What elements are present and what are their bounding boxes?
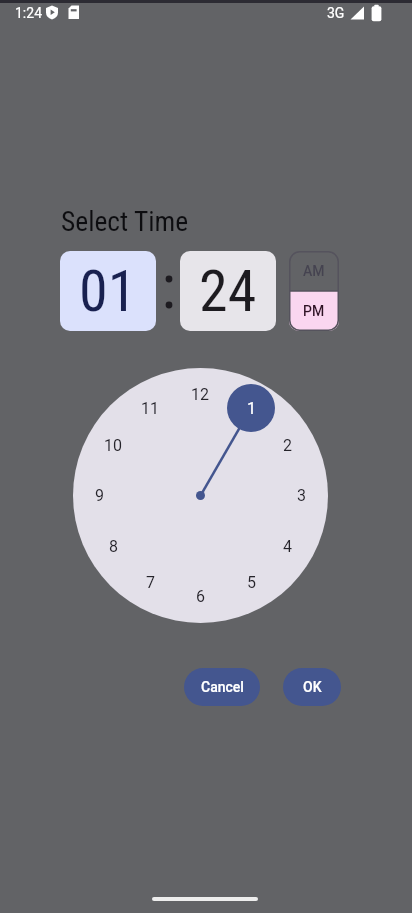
button[interactable]: Cancel	[184, 668, 260, 706]
staticText: 9	[95, 486, 104, 505]
button[interactable]: 24	[180, 251, 276, 331]
button[interactable]: 01	[60, 251, 156, 331]
staticText: 12	[191, 385, 209, 404]
staticText: OK	[303, 679, 322, 695]
staticText: 1	[247, 399, 256, 418]
button[interactable]: OK	[283, 668, 341, 706]
staticText: Cancel	[201, 679, 244, 695]
staticText: 1:24	[15, 5, 42, 21]
staticText: 4	[283, 537, 292, 556]
staticText: Select Time	[61, 205, 189, 237]
staticText: 3G	[327, 5, 345, 21]
staticText: AM	[303, 263, 325, 279]
staticText: 6	[196, 587, 205, 606]
staticText: 11	[141, 399, 159, 418]
button[interactable]: PM	[289, 291, 339, 331]
staticText: 24	[199, 257, 257, 325]
staticText: 5	[247, 573, 256, 592]
button[interactable]: 1	[227, 384, 275, 432]
staticText: 10	[104, 436, 122, 455]
staticText: 8	[109, 537, 118, 556]
staticText: 7	[146, 573, 155, 592]
button[interactable]: AM	[289, 251, 339, 291]
staticText: PM	[303, 303, 325, 319]
staticText: 2	[283, 436, 292, 455]
staticText: 01	[79, 257, 137, 325]
staticText: 3	[297, 486, 306, 505]
